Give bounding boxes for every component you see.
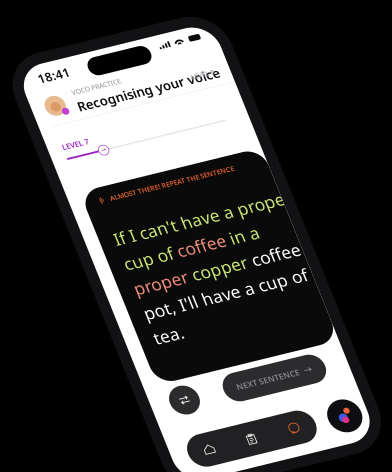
staticText: 18:41 [56,96,119,128]
staticText: ALMOST THERE! REPEAT THE SENTENCE [100,361,349,379]
staticText: LEVEL 7 [50,242,103,261]
staticText: Recognising your voice [108,166,392,199]
staticText: VOCO PRACTICE [108,144,206,162]
staticText: If I can't have a proper [77,428,392,472]
